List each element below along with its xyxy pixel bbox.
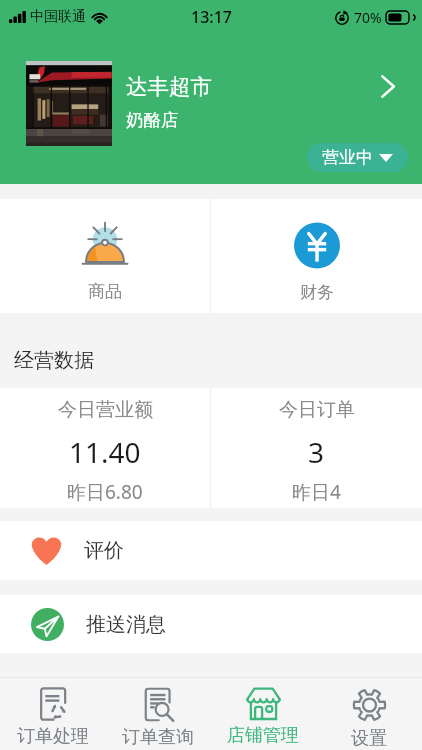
staticText: 70%: [354, 8, 382, 27]
button[interactable]: 推送消息: [0, 595, 422, 653]
staticText: 13:17: [191, 6, 232, 28]
button[interactable]: 今日营业额: [0, 388, 210, 508]
staticText: 设置: [351, 727, 387, 750]
button[interactable]: 营业中: [307, 143, 408, 172]
button[interactable]: 达丰超市: [0, 34, 422, 160]
other: 打开店铺详情: [381, 75, 395, 98]
button[interactable]: 订单处理: [0, 678, 105, 750]
staticText: 商品: [88, 281, 122, 302]
button[interactable]: 财务: [211, 199, 422, 313]
button[interactable]: 商品: [0, 199, 210, 313]
staticText: 达丰超市: [126, 73, 212, 100]
button[interactable]: 设置: [316, 678, 422, 750]
button[interactable]: 评价: [0, 521, 422, 580]
button[interactable]: 订单查询: [105, 678, 210, 750]
button[interactable]: 店铺管理: [210, 678, 316, 750]
staticText: 中国联通: [30, 8, 86, 26]
button[interactable]: 今日订单: [211, 388, 422, 508]
staticText: 今日订单: [279, 398, 355, 422]
staticText: 经营数据: [14, 348, 94, 373]
staticText: 订单处理: [17, 725, 89, 748]
staticText: 评价: [84, 538, 124, 563]
staticText: 店铺管理: [227, 724, 299, 747]
staticText: 奶酪店: [126, 109, 179, 131]
staticText: 今日营业额: [58, 398, 153, 422]
staticText: 订单查询: [122, 726, 194, 749]
staticText: 营业中: [322, 147, 373, 168]
staticText: 昨日4: [292, 479, 341, 505]
staticText: 推送消息: [86, 612, 166, 637]
staticText: 3: [308, 433, 325, 471]
staticText: 11.40: [69, 433, 141, 471]
staticText: 昨日6.80: [67, 479, 143, 505]
staticText: 财务: [300, 282, 334, 303]
